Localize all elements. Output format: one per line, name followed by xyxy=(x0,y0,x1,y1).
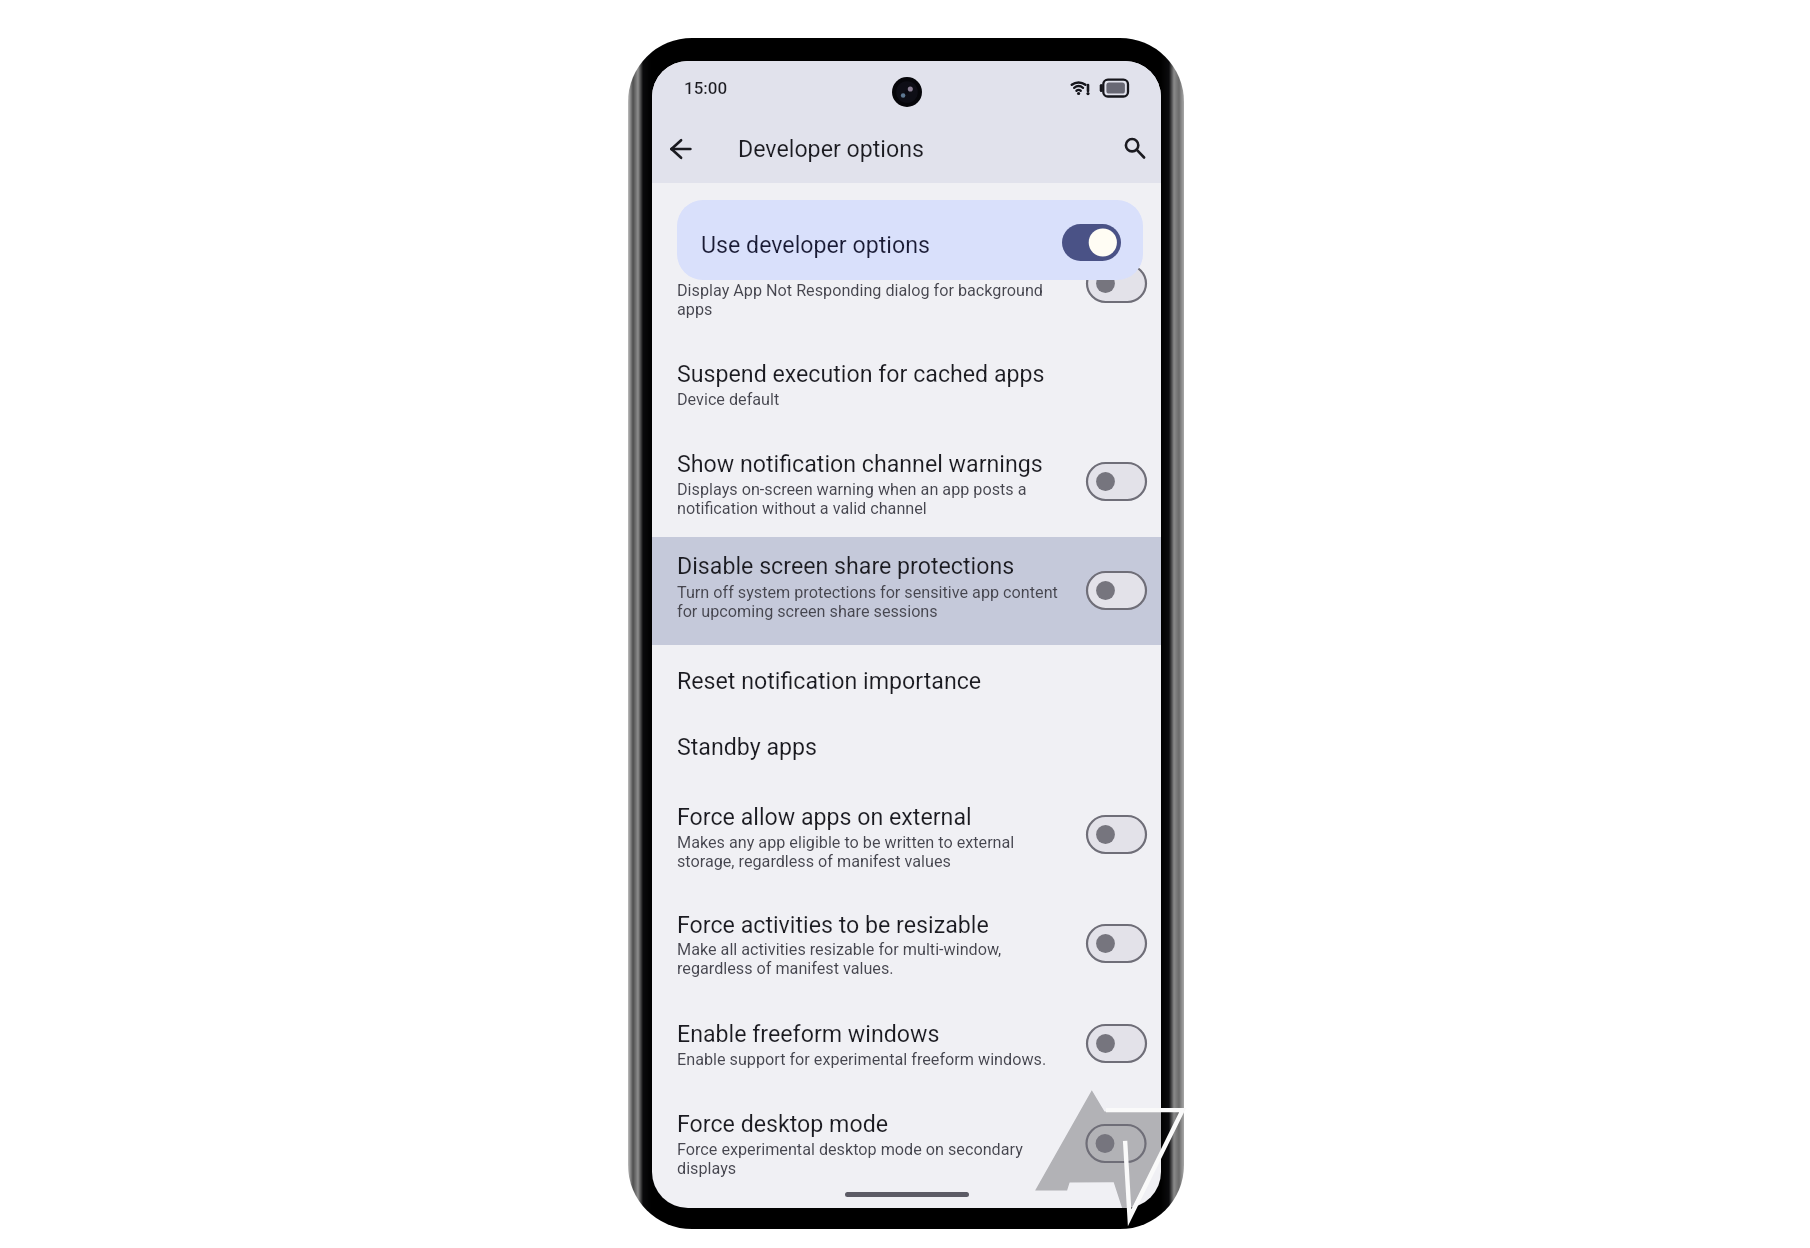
staticText: Standby apps xyxy=(677,733,818,760)
button[interactable] xyxy=(652,791,1161,891)
staticText: Enable support for experimental freeform… xyxy=(677,1050,1047,1069)
button[interactable]: Search xyxy=(1112,126,1160,174)
staticText: Developer options xyxy=(738,135,924,162)
staticText: Enable freeform windows xyxy=(677,1020,940,1047)
staticText: Force experimental desktop mode on secon… xyxy=(677,1140,1023,1178)
button[interactable]: Off xyxy=(1087,925,1146,962)
button[interactable] xyxy=(652,1009,1161,1089)
button[interactable]: Off xyxy=(1087,1025,1146,1062)
button[interactable] xyxy=(652,537,1161,645)
staticText: Make all activities resizable for multi-… xyxy=(677,940,1002,978)
button[interactable]: Off xyxy=(1087,463,1146,500)
button[interactable] xyxy=(652,721,1161,787)
button[interactable]: Off xyxy=(1087,265,1146,302)
staticText: Suspend execution for cached apps xyxy=(677,360,1045,387)
staticText: 15:00 xyxy=(684,78,728,98)
staticText: Display App Not Responding dialog for ba… xyxy=(677,281,1043,319)
staticText: Force desktop mode xyxy=(677,1110,889,1137)
staticText: Makes any app eligible to be written to … xyxy=(677,833,1015,871)
button[interactable] xyxy=(652,442,1161,537)
button[interactable] xyxy=(652,351,1161,441)
staticText: Show notification channel warnings xyxy=(677,450,1043,477)
button[interactable]: Off xyxy=(1087,1125,1146,1162)
staticText: Force allow apps on external xyxy=(677,803,972,830)
button[interactable] xyxy=(652,257,1161,317)
staticText: Reset notification importance xyxy=(677,667,982,694)
staticText: Use developer options xyxy=(701,231,930,258)
staticText: Device default xyxy=(677,390,780,409)
staticText: Force activities to be resizable xyxy=(677,911,989,938)
button[interactable]: Navigate up xyxy=(657,125,705,173)
button[interactable]: Use developer options xyxy=(677,200,1143,280)
button[interactable] xyxy=(652,901,1161,1001)
staticText: Displays on-screen warning when an app p… xyxy=(677,480,1027,518)
staticText: Turn off system protections for sensitiv… xyxy=(677,583,1058,621)
button[interactable] xyxy=(652,655,1161,721)
button[interactable]: Use developer options, on xyxy=(1062,224,1121,261)
button[interactable] xyxy=(652,1099,1161,1199)
staticText: Disable screen share protections xyxy=(677,552,1015,579)
button[interactable]: Off xyxy=(1087,572,1146,609)
button[interactable]: Off xyxy=(1087,816,1146,853)
